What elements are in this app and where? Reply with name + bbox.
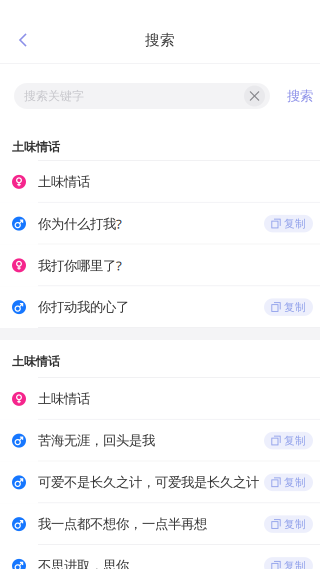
- button[interactable]: 不思进取，思你: [0, 545, 320, 569]
- staticText: 搜索: [145, 31, 175, 49]
- staticText: 土味情话: [38, 391, 90, 407]
- button[interactable]: 我一点都不想你，一点半再想: [0, 503, 320, 545]
- button[interactable]: 苦海无涯，回头是我: [0, 420, 320, 462]
- staticText: 可爱不是长久之计，可爱我是长久之计: [38, 474, 259, 491]
- button[interactable]: 你打动我的心了: [0, 286, 320, 328]
- staticText: 搜索关键字: [24, 89, 84, 103]
- staticText: 土味情话: [12, 354, 60, 369]
- staticText: 你打动我的心了: [38, 299, 129, 315]
- staticText: 我打你哪里了?: [38, 256, 122, 274]
- staticText: 复制: [284, 518, 306, 531]
- button[interactable]: 复制: [264, 432, 313, 449]
- button[interactable]: 复制: [264, 557, 313, 569]
- button[interactable]: 复制: [264, 515, 313, 533]
- staticText: 土味情话: [38, 174, 90, 190]
- staticText: 你为什么打我?: [38, 215, 122, 232]
- button[interactable]: Back: [0, 18, 46, 62]
- button[interactable]: 搜索: [280, 76, 320, 116]
- staticText: 不思进取，思你: [38, 558, 129, 569]
- staticText: 土味情话: [12, 140, 60, 154]
- button[interactable]: 可爱不是长久之计，可爱我是长久之计: [0, 461, 320, 503]
- button[interactable]: 复制: [264, 298, 313, 316]
- button[interactable]: 复制: [264, 215, 313, 232]
- button[interactable]: 土味情话: [0, 161, 320, 203]
- staticText: 复制: [284, 301, 306, 314]
- staticText: 复制: [284, 434, 306, 447]
- button[interactable]: 你为什么打我?: [0, 203, 320, 245]
- staticText: 搜索: [287, 88, 313, 104]
- staticText: 复制: [284, 559, 306, 569]
- button[interactable]: 我打你哪里了?: [0, 244, 320, 286]
- staticText: 苦海无涯，回头是我: [38, 432, 155, 449]
- button[interactable]: 土味情话: [0, 378, 320, 420]
- button[interactable]: 复制: [264, 474, 313, 491]
- staticText: 我一点都不想你，一点半再想: [38, 516, 207, 532]
- button[interactable]: Clear: [239, 83, 270, 109]
- staticText: 复制: [284, 217, 306, 230]
- staticText: 复制: [284, 476, 306, 489]
